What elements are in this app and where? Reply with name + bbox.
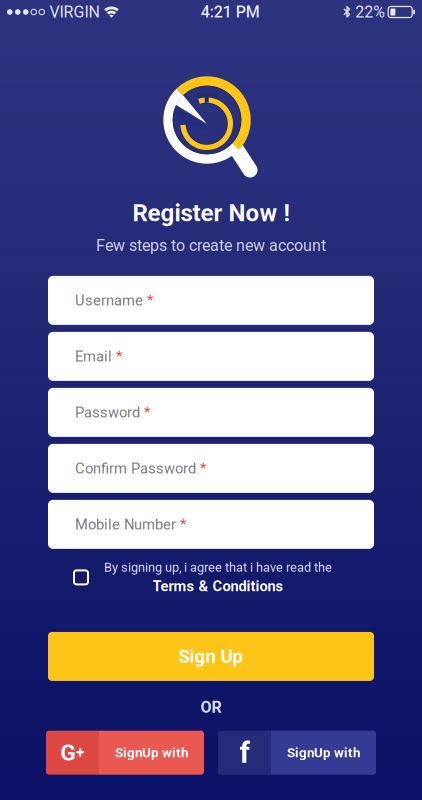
staticText: * bbox=[196, 460, 206, 477]
button[interactable]: Confirm Password bbox=[48, 444, 374, 493]
staticText: Register Now ! bbox=[132, 199, 289, 227]
staticText: SignUp with bbox=[287, 745, 360, 760]
staticText: f bbox=[239, 735, 249, 770]
button[interactable]: Username bbox=[48, 276, 374, 325]
staticText: Username bbox=[75, 292, 143, 309]
button[interactable]: Mobile Number bbox=[48, 500, 374, 549]
staticText: Confirm Password bbox=[75, 460, 196, 477]
staticText: + bbox=[76, 743, 85, 762]
button[interactable]: Sign Up bbox=[48, 632, 374, 681]
button[interactable]: Terms & Conditions bbox=[152, 578, 283, 595]
staticText: Password bbox=[75, 404, 140, 421]
staticText: Terms & Conditions bbox=[152, 578, 283, 595]
staticText: Email bbox=[75, 348, 112, 365]
staticText: SignUp with bbox=[115, 745, 188, 760]
staticText: G bbox=[60, 739, 75, 766]
button[interactable]: Sign up with Facebook bbox=[218, 731, 376, 775]
button[interactable]: Email bbox=[48, 332, 374, 381]
button[interactable]: Password bbox=[48, 388, 374, 437]
staticText: By signing up, i agree that i have read … bbox=[104, 560, 332, 575]
staticText: OR bbox=[200, 698, 221, 717]
staticText: Few steps to create new account bbox=[96, 236, 326, 255]
staticText: Sign Up bbox=[178, 645, 243, 667]
staticText: Mobile Number bbox=[75, 516, 176, 533]
staticText: * bbox=[140, 404, 150, 421]
button[interactable]: Sign up with Google bbox=[46, 731, 204, 775]
staticText: 22% bbox=[355, 3, 385, 21]
staticText: * bbox=[176, 516, 186, 533]
staticText: VIRGIN bbox=[49, 3, 99, 21]
button[interactable]: Agree to terms and conditions bbox=[74, 570, 88, 584]
staticText: 4:21 PM bbox=[201, 3, 260, 21]
staticText: * bbox=[112, 348, 122, 365]
staticText: * bbox=[143, 292, 153, 309]
